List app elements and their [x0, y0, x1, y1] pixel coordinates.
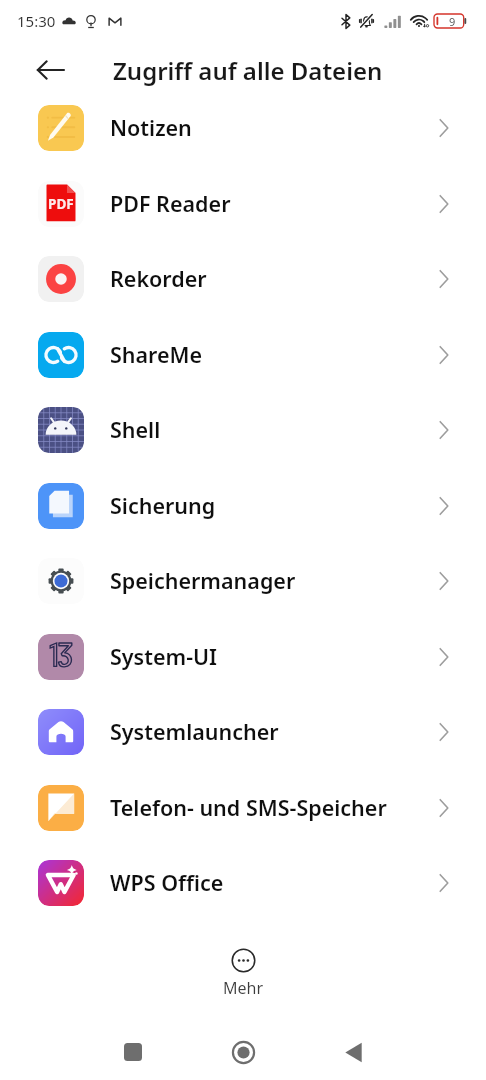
button[interactable]: System-UI [0, 619, 486, 695]
button[interactable]: Systemlauncher [0, 694, 486, 770]
button[interactable]: Shell [0, 392, 486, 468]
staticText: WPS Office [110, 868, 224, 897]
staticText: Sicherung [110, 491, 216, 520]
button[interactable]: Zurück [28, 48, 72, 92]
staticText: Systemlauncher [110, 717, 279, 746]
staticText: PDF [48, 195, 74, 213]
staticText: 15:30 [17, 11, 56, 31]
staticText: 9 [449, 14, 456, 29]
staticText: PDF Reader [110, 189, 231, 218]
button[interactable]: Rekorder [0, 241, 486, 317]
staticText: System-UI [110, 642, 218, 671]
button[interactable]: Letzte Apps [103, 1022, 163, 1080]
button[interactable]: ShareMe [0, 317, 486, 393]
button[interactable]: Startseite [213, 1022, 273, 1080]
staticText: Telefon- und SMS-Speicher [110, 793, 387, 822]
button[interactable]: Mehr [207, 943, 280, 1004]
button[interactable]: WPS Office [0, 845, 486, 921]
staticText: Zugriff auf alle Dateien [113, 54, 383, 87]
button[interactable]: Speichermanager [0, 543, 486, 619]
staticText: ShareMe [110, 340, 203, 369]
button[interactable]: PDF [0, 166, 486, 242]
button[interactable]: Zurück [323, 1022, 383, 1080]
button[interactable]: Telefon- und SMS-Speicher [0, 770, 486, 846]
staticText: Rekorder [110, 264, 207, 293]
staticText: Shell [110, 415, 161, 444]
button[interactable]: Notizen [0, 90, 486, 166]
staticText: Notizen [110, 113, 192, 142]
button[interactable]: Sicherung [0, 468, 486, 544]
staticText: Mehr [223, 977, 264, 999]
staticText: Speichermanager [110, 566, 296, 595]
